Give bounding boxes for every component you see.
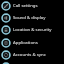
button[interactable]: Privacy <box>0 61 64 64</box>
staticText: Call settings <box>13 2 38 8</box>
button[interactable]: Sound & display <box>0 12 64 24</box>
button[interactable]: Accounts & sync <box>0 49 64 61</box>
staticText: Sound & display <box>13 14 46 20</box>
button[interactable]: Applications <box>0 37 64 49</box>
staticText: Location & security <box>13 26 52 32</box>
button[interactable]: Location & security <box>0 24 64 36</box>
staticText: Applications <box>13 39 38 45</box>
button[interactable]: Call settings <box>0 0 64 12</box>
staticText: Accounts & sync <box>13 51 46 57</box>
